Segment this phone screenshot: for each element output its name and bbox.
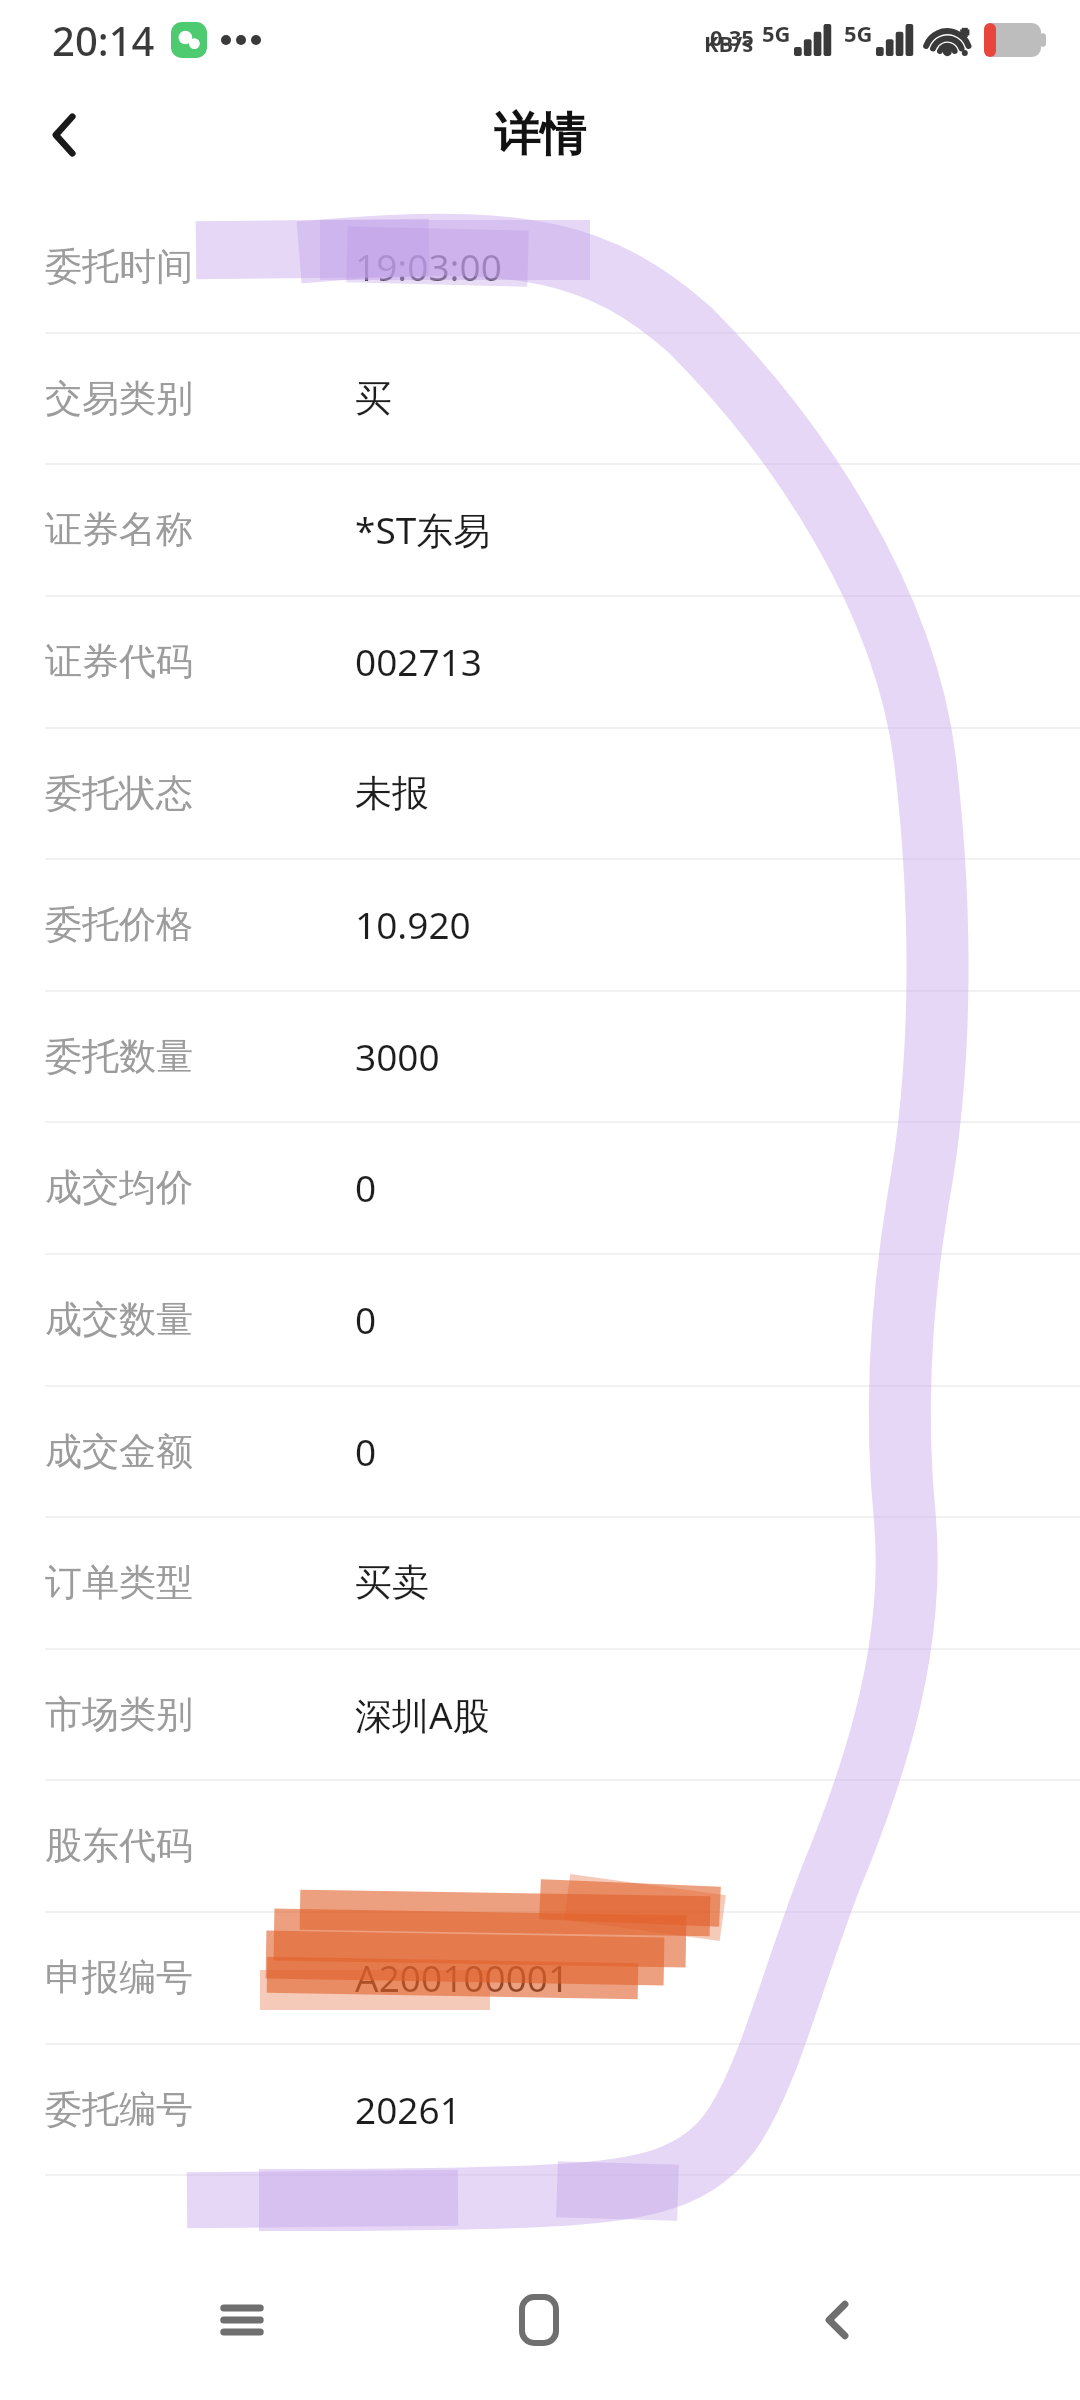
staticText: 证券名称 — [45, 506, 193, 553]
staticText: 订单类型 — [45, 1559, 193, 1606]
button[interactable]: 委托时间 — [0, 200, 1080, 332]
staticText: 0 — [355, 1162, 377, 1212]
staticText: 交易类别 — [45, 375, 193, 422]
button[interactable]: 委托价格 — [0, 858, 1080, 990]
staticText: 买卖 — [355, 1559, 429, 1606]
button[interactable]: Recent apps — [187, 2265, 297, 2375]
button[interactable]: 股东代码 — [0, 1779, 1080, 1911]
staticText: *ST东易 — [355, 504, 491, 555]
staticText: 002713 — [355, 636, 482, 686]
staticText: 委托时间 — [45, 243, 193, 290]
staticText: 申报编号 — [45, 1954, 193, 2001]
button[interactable]: 成交均价 — [0, 1121, 1080, 1253]
staticText: A200100001 — [355, 1952, 570, 2002]
button[interactable]: 委托编号 — [0, 2043, 1080, 2175]
button[interactable]: 委托状态 — [0, 727, 1080, 859]
staticText: 委托价格 — [45, 901, 193, 948]
staticText: 委托编号 — [45, 2086, 193, 2133]
staticText: 市场类别 — [45, 1691, 193, 1738]
staticText: 未报 — [355, 770, 429, 817]
staticText: 详情 — [494, 106, 586, 164]
staticText: 0.35 — [710, 22, 754, 52]
button[interactable]: 证券名称 — [0, 463, 1080, 595]
staticText: 委托状态 — [45, 770, 193, 817]
button[interactable]: 证券代码 — [0, 595, 1080, 727]
staticText: KB/s — [704, 28, 754, 58]
staticText: 0 — [355, 1294, 377, 1344]
button[interactable]: 委托数量 — [0, 990, 1080, 1122]
staticText: 20:14 — [52, 13, 155, 67]
staticText: 5G — [762, 18, 791, 48]
staticText: 成交金额 — [45, 1428, 193, 1475]
staticText: 成交均价 — [45, 1164, 193, 1211]
staticText: 买 — [355, 375, 392, 422]
button[interactable]: 成交金额 — [0, 1385, 1080, 1517]
button[interactable]: 市场类别 — [0, 1648, 1080, 1780]
staticText: 20261 — [355, 2084, 461, 2134]
staticText: 深圳A股 — [355, 1689, 490, 1740]
staticText: 股东代码 — [45, 1822, 193, 1869]
staticText: 证券代码 — [45, 638, 193, 685]
button[interactable]: Home — [484, 2265, 594, 2375]
button[interactable]: 交易类别 — [0, 332, 1080, 464]
button[interactable]: 订单类型 — [0, 1516, 1080, 1648]
staticText: 3000 — [355, 1031, 440, 1081]
staticText: 0 — [355, 1426, 377, 1476]
button[interactable]: Back — [782, 2265, 892, 2375]
staticText: 5G — [844, 18, 873, 48]
staticText: 10.920 — [355, 899, 471, 949]
staticText: 委托数量 — [45, 1033, 193, 1080]
button[interactable]: Back — [20, 90, 110, 180]
button[interactable]: 申报编号 — [0, 1911, 1080, 2043]
button[interactable]: 成交数量 — [0, 1253, 1080, 1385]
staticText: 成交数量 — [45, 1296, 193, 1343]
staticText: 19:03:00 — [355, 241, 502, 291]
